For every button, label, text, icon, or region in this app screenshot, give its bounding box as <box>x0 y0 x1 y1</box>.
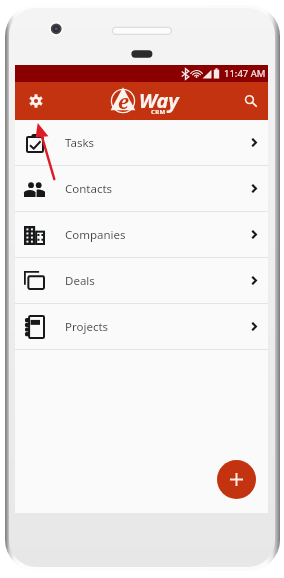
staticText: Contacts <box>65 181 251 197</box>
button[interactable]: Deals <box>15 258 268 303</box>
staticText: Tasks <box>65 135 251 151</box>
button[interactable]: Projects <box>15 304 268 349</box>
staticText: CRM <box>151 108 166 116</box>
button[interactable]: Add <box>217 460 256 499</box>
staticText: Projects <box>65 319 251 335</box>
button[interactable]: Search <box>232 83 268 119</box>
staticText: 11:47 AM <box>224 67 266 80</box>
button[interactable]: Companies <box>15 212 268 257</box>
staticText: Companies <box>65 227 251 243</box>
button[interactable]: Tasks <box>15 120 268 165</box>
staticText: Way <box>139 87 179 114</box>
button[interactable]: Contacts <box>15 166 268 211</box>
staticText: e <box>118 88 129 114</box>
button[interactable]: Settings <box>18 83 54 119</box>
staticText: Deals <box>65 273 251 289</box>
